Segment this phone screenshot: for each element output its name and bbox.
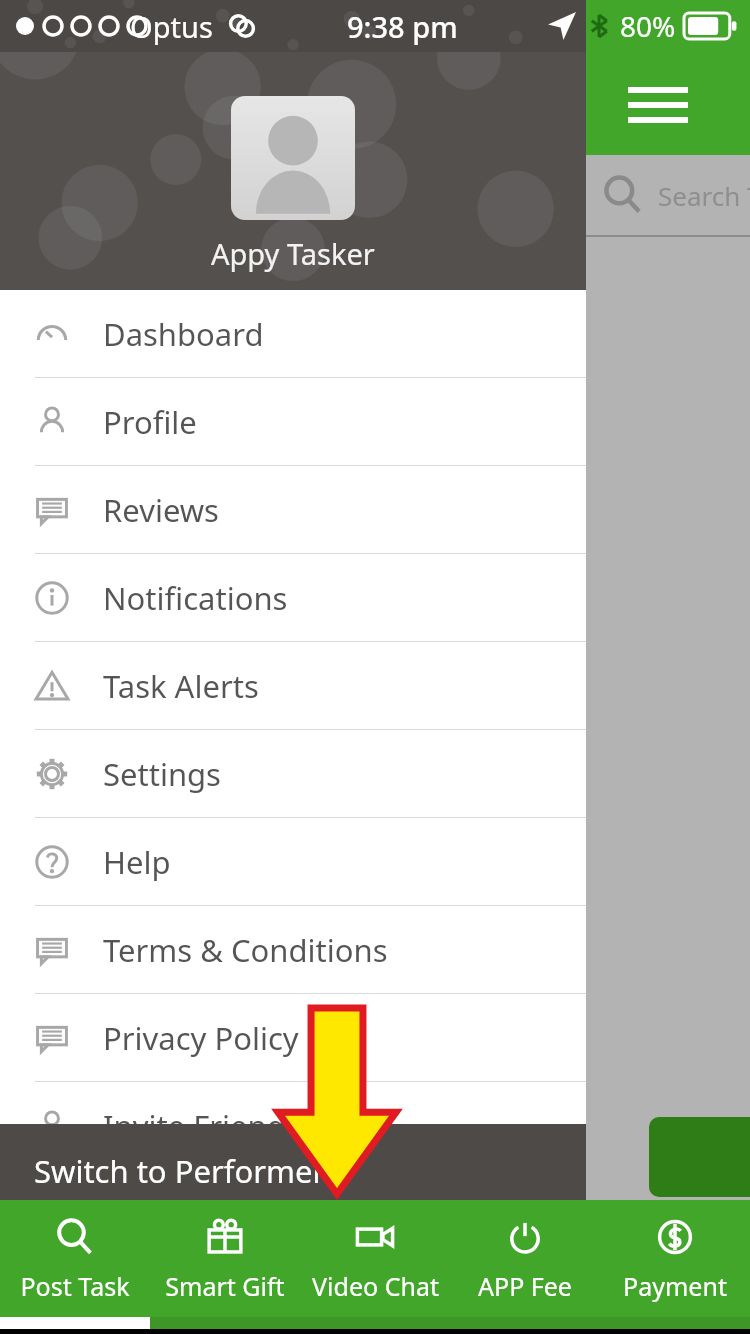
- staticText: Invite Friends: [103, 1105, 301, 1147]
- button[interactable]: APP Fee: [450, 1200, 600, 1317]
- button[interactable]: Action: [649, 1117, 750, 1197]
- staticText: Settings: [103, 753, 221, 795]
- button[interactable]: Switch to Performer: [0, 1124, 586, 1217]
- staticText: Smart Gift: [165, 1269, 285, 1303]
- button[interactable]: Video Chat: [300, 1200, 450, 1317]
- button[interactable]: Profile: [0, 378, 586, 465]
- staticText: Optus: [130, 7, 213, 46]
- staticText: Profile: [103, 401, 197, 443]
- button[interactable]: Task Alerts: [0, 642, 586, 729]
- button[interactable]: Dashboard: [0, 290, 586, 377]
- button[interactable]: Invite Friends: [0, 1082, 586, 1169]
- button[interactable]: Profile photo: [231, 96, 355, 220]
- button[interactable]: Privacy Policy: [0, 994, 586, 1081]
- staticText: APP Fee: [478, 1269, 572, 1303]
- staticText: Video Chat: [312, 1269, 439, 1303]
- button[interactable]: Reviews: [0, 466, 586, 553]
- staticText: Payment: [623, 1269, 727, 1303]
- staticText: Help: [103, 841, 171, 883]
- staticText: Notifications: [103, 577, 288, 619]
- button[interactable]: Smart Gift: [150, 1200, 300, 1317]
- button[interactable]: Terms & Conditions: [0, 906, 586, 993]
- staticText: 9:38 pm: [347, 7, 458, 46]
- staticText: Appy Tasker: [211, 234, 375, 273]
- button[interactable]: Settings: [0, 730, 586, 817]
- staticText: Task Alerts: [103, 665, 259, 707]
- staticText: Dashboard: [103, 313, 264, 355]
- button[interactable]: Notifications: [0, 554, 586, 641]
- staticText: Search T: [658, 178, 750, 213]
- button[interactable]: Menu: [620, 70, 686, 136]
- staticText: Terms & Conditions: [103, 929, 388, 971]
- staticText: Post Task: [20, 1269, 130, 1303]
- staticText: Reviews: [103, 489, 219, 531]
- staticText: Privacy Policy: [103, 1017, 299, 1059]
- staticText: Switch to Performer: [34, 1150, 326, 1192]
- button[interactable]: Post Task: [0, 1200, 150, 1317]
- button[interactable]: Payment: [600, 1200, 750, 1317]
- button[interactable]: Help: [0, 818, 586, 905]
- staticText: 80%: [620, 7, 676, 45]
